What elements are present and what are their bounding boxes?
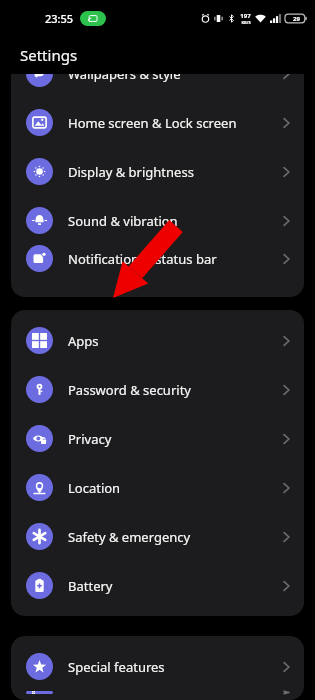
staticText: Password & security (68, 381, 191, 399)
staticText: Home screen & Lock screen (68, 114, 237, 132)
button[interactable]: Wallpapers & style (11, 74, 304, 98)
button[interactable]: Home screen & Lock screen (11, 98, 304, 147)
button[interactable]: Password & security (11, 365, 304, 414)
button[interactable]: Display & brightness (11, 147, 304, 196)
staticText: Wallpapers & style (68, 74, 181, 83)
button[interactable]: Battery (11, 561, 304, 610)
button[interactable]: Location (11, 463, 304, 512)
staticText: 197 (240, 12, 251, 20)
staticText: Safety & emergency (68, 528, 191, 546)
staticText: Display & brightness (68, 163, 194, 181)
staticText: 23:55 (45, 11, 74, 26)
button[interactable]: Notification & status bar (11, 245, 304, 272)
button[interactable]: Apps (11, 316, 304, 365)
button[interactable]: Special features (11, 642, 304, 691)
staticText: Apps (68, 332, 99, 350)
staticText: Special features (68, 658, 165, 676)
staticText: 29 (293, 15, 300, 23)
staticText: KB/S (241, 20, 251, 25)
button[interactable]: Sound & vibration (11, 196, 304, 245)
button[interactable]: Safety & emergency (11, 512, 304, 561)
button[interactable]: Digital Wellbeing (11, 691, 304, 694)
staticText: Battery (68, 577, 113, 595)
staticText: Sound & vibration (68, 212, 178, 230)
staticText: Privacy (68, 430, 112, 448)
staticText: Location (68, 479, 121, 497)
staticText: Notification & status bar (68, 250, 217, 268)
staticText: Settings (20, 45, 78, 65)
button[interactable]: Privacy (11, 414, 304, 463)
